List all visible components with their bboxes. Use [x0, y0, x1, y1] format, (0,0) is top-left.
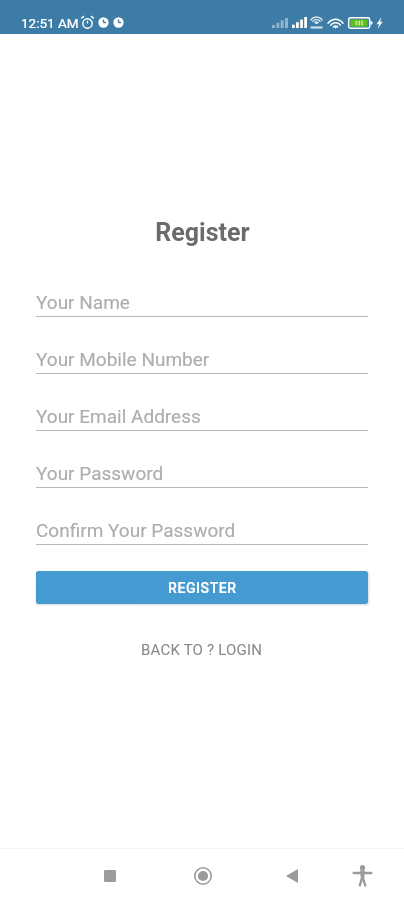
staticText: 12:51 AM — [21, 15, 79, 31]
staticText: Your Name — [36, 291, 130, 313]
staticText: Confirm Your Password — [36, 519, 236, 541]
button[interactable]: Accessibility — [340, 854, 384, 898]
staticText: Your Mobile Number — [36, 348, 210, 370]
staticText: Your Email Address — [36, 405, 201, 427]
button[interactable]: Recent apps — [88, 854, 132, 898]
staticText: BACK TO ? LOGIN — [141, 641, 263, 659]
staticText: REGISTER — [168, 580, 237, 596]
button[interactable]: BACK TO ? LOGIN — [131, 630, 273, 670]
button[interactable]: REGISTER — [36, 571, 368, 604]
staticText: Register — [155, 218, 250, 247]
button[interactable]: Back — [270, 854, 314, 898]
button[interactable]: Home — [181, 854, 225, 898]
staticText: Your Password — [36, 462, 164, 484]
